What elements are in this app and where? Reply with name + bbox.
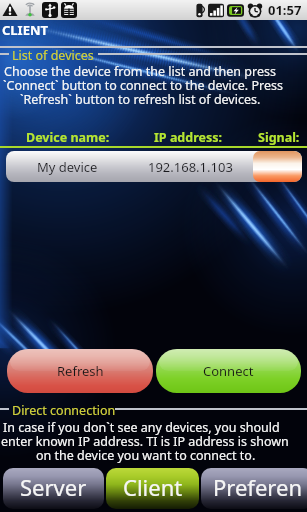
staticText: on the device you want to connect to. [36,447,256,464]
button[interactable]: My device [6,151,302,182]
staticText: Connect [203,362,254,380]
button[interactable]: Preferen [201,468,307,509]
staticText: My device [37,158,98,176]
staticText: Device name: [26,129,110,146]
staticText: enter known IP address. TI is IP address… [1,433,289,450]
button[interactable]: Client [106,468,199,509]
staticText: In case if you don`t see any devices, yo… [3,419,280,436]
staticText: CLIENT [2,21,49,39]
staticText: Preferen [213,472,302,502]
staticText: `Refresh` button to refresh list of devi… [20,91,261,108]
staticText: Refresh [57,362,104,380]
staticText: IP address: [154,129,223,146]
staticText: `Connect` button to connect to the devic… [3,77,283,94]
staticText: Signal: [258,129,300,146]
staticText: 01:57 [268,1,302,19]
staticText: List of devices [12,47,94,64]
button[interactable]: Refresh [7,349,153,393]
staticText: Direct connection [12,402,116,419]
staticText: 192.168.1.103 [148,158,233,176]
staticText: Server [20,472,87,502]
button[interactable]: Connect [156,349,301,393]
staticText: Client [123,472,183,502]
button[interactable]: Server [3,468,104,509]
staticText: Choose the device from the list and then… [4,63,276,80]
